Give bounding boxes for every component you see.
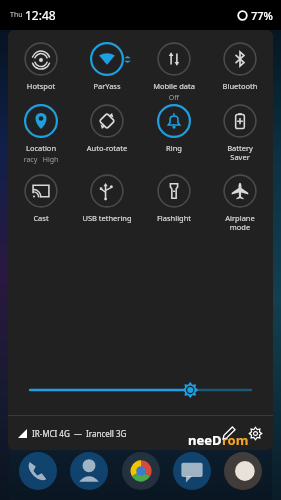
- button[interactable]: Settings: [244, 422, 266, 444]
- button[interactable]: Edit: [218, 422, 240, 444]
- staticText: Thu: [10, 10, 23, 20]
- button[interactable]: Flashlight: [143, 174, 205, 236]
- button[interactable]: Brightness: [8, 375, 273, 405]
- button[interactable]: Ring: [143, 104, 205, 174]
- staticText: Ring: [143, 143, 205, 153]
- button[interactable]: App: [19, 452, 57, 490]
- button[interactable]: Bluetooth: [209, 42, 271, 104]
- button[interactable]: Auto-rotate: [76, 104, 138, 174]
- button[interactable]: App: [224, 452, 262, 490]
- staticText: racy High: [10, 155, 72, 165]
- staticText: Airplane mode: [209, 213, 271, 232]
- staticText: Battery Saver: [209, 143, 271, 162]
- button[interactable]: ParYass: [76, 42, 138, 104]
- staticText: Auto-rotate: [76, 143, 138, 153]
- staticText: Off: [143, 93, 205, 103]
- button[interactable]: App: [122, 452, 160, 490]
- staticText: 12:48: [25, 7, 56, 23]
- button[interactable]: Cast: [10, 174, 72, 236]
- button[interactable]: Mobile data: [143, 42, 205, 104]
- button[interactable]: USB tethering: [76, 174, 138, 236]
- staticText: Mobile data: [143, 81, 205, 91]
- button[interactable]: IR-MCI 4G — Irancell 3G: [18, 428, 127, 439]
- button[interactable]: Hotspot: [10, 42, 72, 104]
- staticText: Location: [10, 143, 72, 153]
- staticText: Cast: [10, 213, 72, 223]
- button[interactable]: App: [70, 452, 108, 490]
- staticText: Bluetooth: [209, 81, 271, 91]
- staticText: 77%: [251, 8, 273, 23]
- staticText: neeD: [188, 431, 222, 449]
- staticText: Flashlight: [143, 213, 205, 223]
- button[interactable]: Location: [10, 104, 72, 174]
- staticText: USB tethering: [76, 213, 138, 223]
- button[interactable]: App: [173, 452, 211, 490]
- staticText: Hotspot: [10, 81, 72, 91]
- staticText: ParYass: [76, 81, 138, 91]
- staticText: IR-MCI 4G — Irancell 3G: [32, 428, 127, 439]
- staticText: rom: [222, 431, 249, 449]
- button[interactable]: Airplane mode: [209, 174, 271, 236]
- button[interactable]: Battery Saver: [209, 104, 271, 174]
